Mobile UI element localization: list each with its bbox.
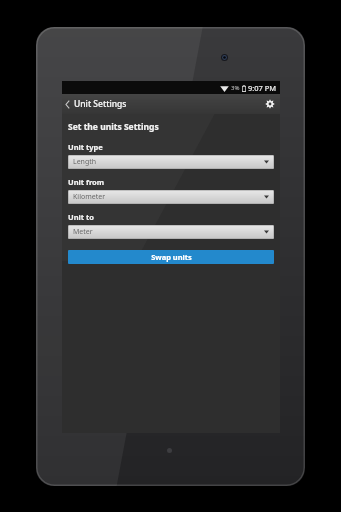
staticText: Length bbox=[73, 157, 97, 167]
button[interactable]: Length bbox=[68, 155, 274, 169]
staticText: 3% bbox=[231, 84, 240, 92]
staticText: Unit Settings bbox=[74, 98, 127, 110]
button[interactable]: Settings bbox=[260, 94, 280, 114]
button[interactable]: Meter bbox=[68, 225, 274, 239]
staticText: Unit to bbox=[68, 212, 94, 222]
button[interactable]: Unit Settings bbox=[62, 94, 132, 114]
staticText: Swap units bbox=[151, 252, 192, 262]
staticText: Set the units Settings bbox=[68, 121, 159, 133]
button[interactable]: Kilometer bbox=[68, 190, 274, 204]
staticText: Kilometer bbox=[73, 192, 106, 202]
staticText: Unit from bbox=[68, 177, 105, 187]
button[interactable]: Swap units bbox=[68, 250, 274, 264]
staticText: 9:07 PM bbox=[248, 83, 277, 93]
staticText: Meter bbox=[73, 227, 93, 237]
staticText: Unit type bbox=[68, 142, 103, 152]
